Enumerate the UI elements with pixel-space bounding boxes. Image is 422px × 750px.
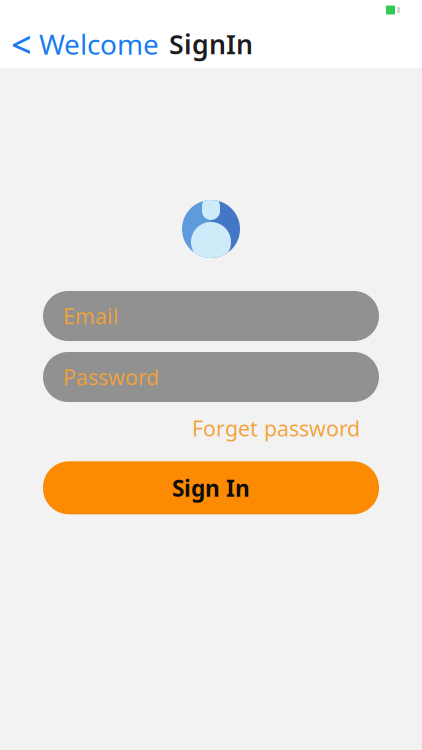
button[interactable]: Password	[43, 352, 379, 402]
staticText: Sign In	[172, 473, 250, 503]
staticText: Email	[63, 302, 119, 330]
button[interactable]: Forget password	[192, 410, 360, 446]
button[interactable]: <	[0, 14, 159, 74]
button[interactable]: Email	[43, 291, 379, 341]
staticText: Password	[63, 363, 159, 391]
button[interactable]: Sign In	[43, 461, 379, 514]
staticText: Forget password	[192, 414, 360, 442]
staticText: SignIn	[169, 26, 253, 62]
staticText: <	[11, 20, 32, 68]
staticText: Welcome	[39, 25, 159, 63]
